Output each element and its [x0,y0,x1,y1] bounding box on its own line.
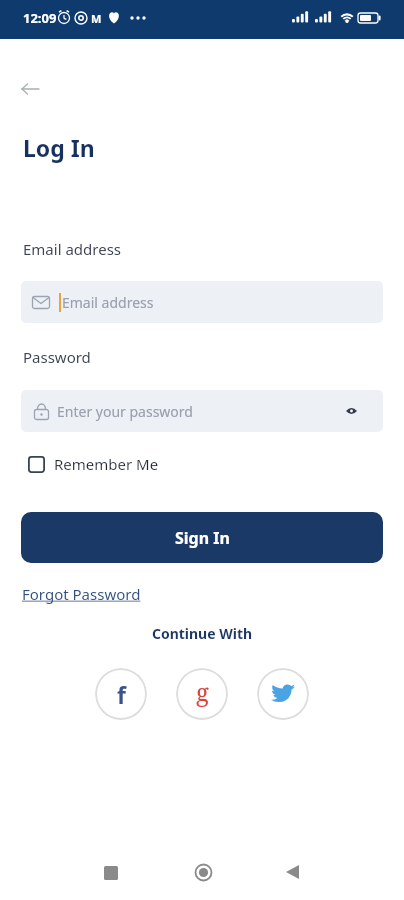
button[interactable]: g [176,668,228,720]
staticText: f [117,679,126,710]
staticText: 12:09 [23,9,57,27]
button[interactable] [346,407,357,415]
button[interactable]: Enter your password [21,390,383,432]
staticText: Sign In [175,527,230,549]
staticText: Log In [23,132,95,163]
staticText: M [91,11,102,26]
button[interactable] [286,865,299,879]
button[interactable] [257,668,309,720]
staticText: Enter your password [57,402,193,421]
button[interactable]: Sign In [21,512,383,563]
staticText: Password [23,347,91,367]
staticText: Email address [23,239,122,259]
button[interactable]: Email address [21,281,383,323]
button[interactable] [104,866,118,880]
button[interactable] [195,864,212,881]
staticText: Remember Me [54,454,159,474]
button[interactable]: Remember Me [28,454,159,474]
staticText: Email address [62,293,154,312]
staticText: g [196,675,209,708]
button[interactable]: Forgot Password [22,584,141,604]
button[interactable]: f [95,668,147,720]
staticText: Continue With [0,624,404,643]
button[interactable] [18,80,44,98]
